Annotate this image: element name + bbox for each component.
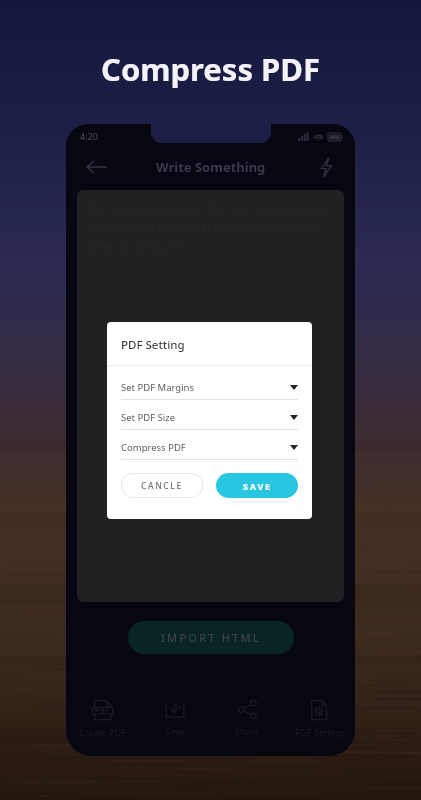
staticText: IMPORT HTML	[161, 630, 261, 645]
button[interactable]: Set PDF Margins	[121, 381, 298, 400]
staticText: Set PDF Size	[121, 411, 176, 424]
staticText: Set PDF Margins	[121, 381, 195, 394]
staticText: 4:20	[80, 130, 98, 142]
staticText: Compress PDF	[101, 48, 320, 90]
button[interactable]: SAVE	[216, 473, 298, 498]
staticText: Share	[235, 725, 260, 737]
staticText: Save	[165, 725, 185, 737]
button[interactable]: CANCLE	[121, 473, 203, 498]
staticText: PDF Setting	[121, 337, 185, 353]
button[interactable]: Create PDF	[66, 690, 139, 746]
staticText: PDF Setting	[295, 726, 344, 738]
button[interactable]: Compress PDF	[121, 441, 298, 460]
staticText: Compress PDF	[121, 441, 186, 454]
button[interactable]: IMPORT HTML	[128, 621, 294, 654]
staticText: CANCLE	[141, 480, 183, 492]
button[interactable]: PDF Setting	[283, 690, 355, 746]
button[interactable]: Quick action	[306, 148, 346, 186]
button[interactable]: It is a long established fact that a rea…	[77, 190, 344, 602]
button[interactable]: Back	[76, 148, 116, 186]
button[interactable]: Set PDF Size	[121, 411, 298, 430]
staticText: Create PDF	[79, 726, 126, 738]
staticText: SAVE	[243, 480, 272, 492]
staticText: Write Something	[156, 158, 266, 176]
